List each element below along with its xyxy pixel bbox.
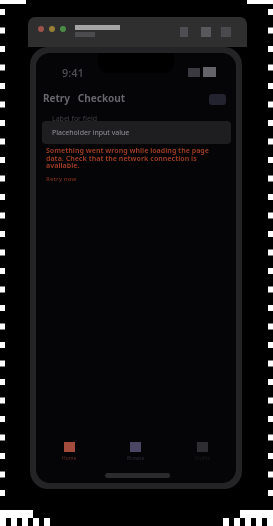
button[interactable]: Home — [36, 436, 102, 468]
button[interactable]: Minimise — [49, 26, 55, 32]
button[interactable]: Browse — [102, 436, 169, 468]
staticText: Placeholder input value — [52, 128, 130, 138]
button[interactable]: Close — [38, 26, 44, 32]
staticText: 9:41 — [62, 65, 84, 80]
staticText: Label for field — [52, 114, 98, 124]
button[interactable]: Account — [209, 94, 226, 105]
button[interactable]: Maximise — [60, 26, 66, 32]
staticText: Browse — [127, 455, 145, 462]
staticText: Retry Checkout — [43, 91, 126, 105]
staticText: Profile — [195, 455, 211, 462]
button[interactable]: Profile — [169, 436, 236, 468]
staticText: Home — [62, 455, 77, 462]
staticText: Something went wrong while loading the p… — [46, 146, 216, 170]
button[interactable]: Placeholder input value — [42, 121, 231, 144]
staticText: Retry now — [46, 175, 77, 183]
